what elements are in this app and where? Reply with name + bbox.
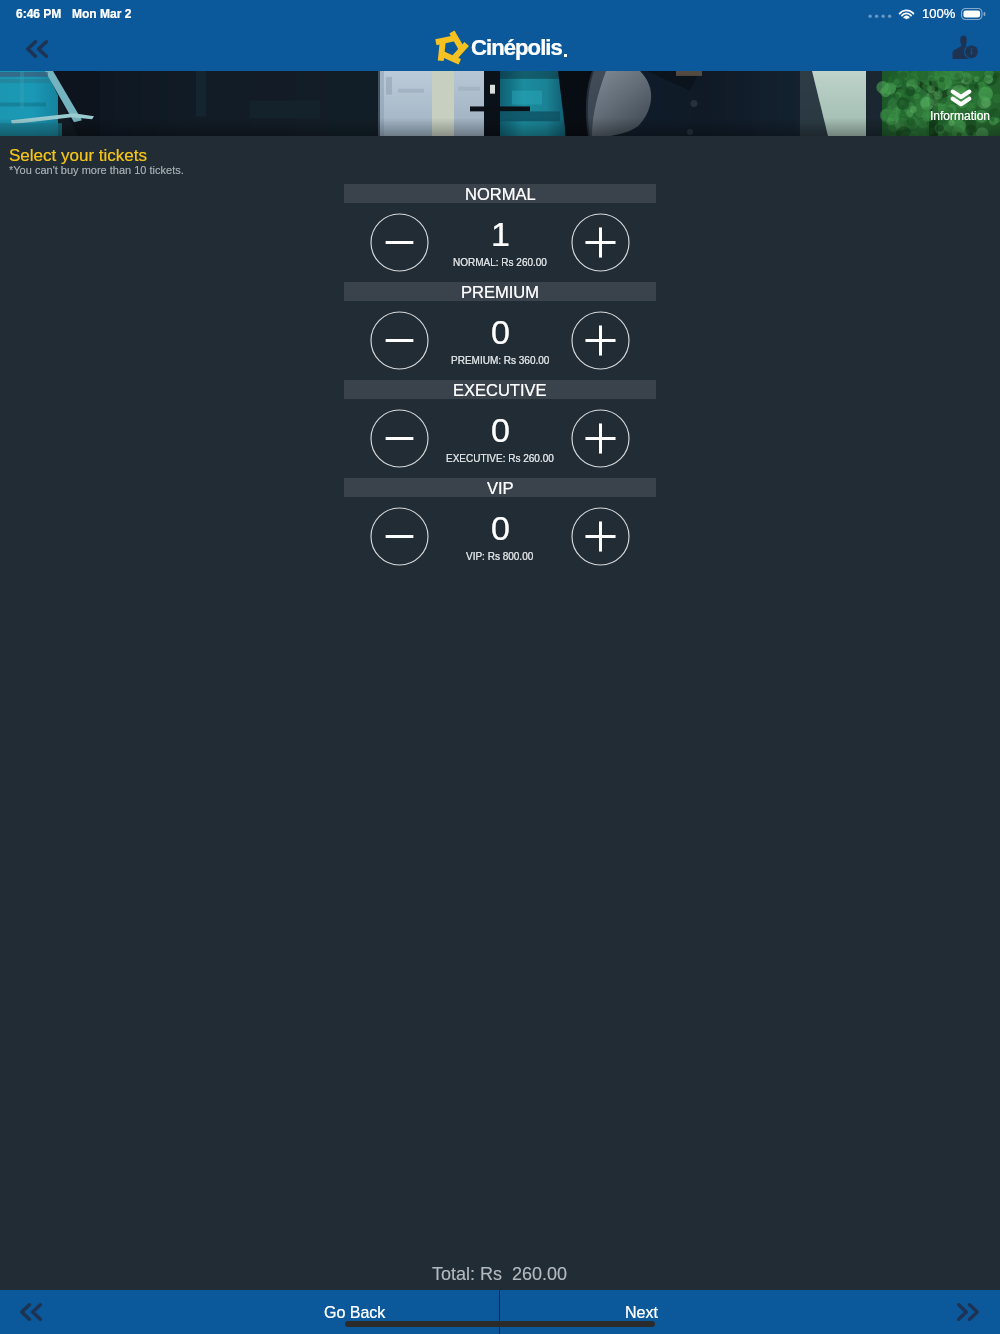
button[interactable]: Decrease PREMIUM	[344, 301, 455, 380]
staticText: PREMIUM	[461, 283, 539, 301]
staticText: 6:46 PM	[16, 7, 62, 20]
staticText: 0	[491, 313, 510, 351]
staticText: Next	[625, 1304, 658, 1322]
staticText: EXECUTIVE	[453, 381, 547, 399]
button[interactable]: Information	[930, 90, 991, 122]
button[interactable]: Go Back	[0, 1290, 499, 1334]
staticText: 100%	[922, 6, 956, 21]
button[interactable]: Decrease NORMAL	[344, 203, 455, 282]
staticText: PREMIUM: Rs 360.00	[451, 355, 550, 366]
staticText: EXECUTIVE: Rs 260.00	[446, 453, 554, 464]
button[interactable]: Increase NORMAL	[545, 203, 656, 282]
button[interactable]: Decrease VIP	[344, 497, 455, 576]
button[interactable]: Account information	[938, 26, 1000, 71]
button[interactable]: Decrease EXECUTIVE	[344, 399, 455, 478]
staticText: 0	[491, 509, 510, 547]
staticText: Information	[930, 109, 991, 122]
staticText: NORMAL	[465, 185, 536, 203]
staticText: Select your tickets	[9, 146, 147, 165]
staticText: Total: Rs 260.00	[432, 1264, 568, 1284]
staticText: Go Back	[324, 1304, 386, 1322]
button[interactable]: Increase PREMIUM	[545, 301, 656, 380]
button[interactable]: Next	[500, 1290, 1000, 1334]
staticText: 1	[491, 215, 510, 253]
button[interactable]: Increase VIP	[545, 497, 656, 576]
staticText: Mon Mar 2	[72, 7, 132, 20]
staticText: VIP: Rs 800.00	[466, 551, 534, 562]
button[interactable]: Back	[0, 26, 62, 71]
staticText: 0	[491, 411, 510, 449]
staticText: *You can't buy more than 10 tickets.	[9, 164, 184, 176]
button[interactable]: Increase EXECUTIVE	[545, 399, 656, 478]
staticText: Cinépolis	[471, 35, 562, 60]
staticText: NORMAL: Rs 260.00	[453, 257, 547, 268]
staticText: VIP	[487, 479, 514, 497]
